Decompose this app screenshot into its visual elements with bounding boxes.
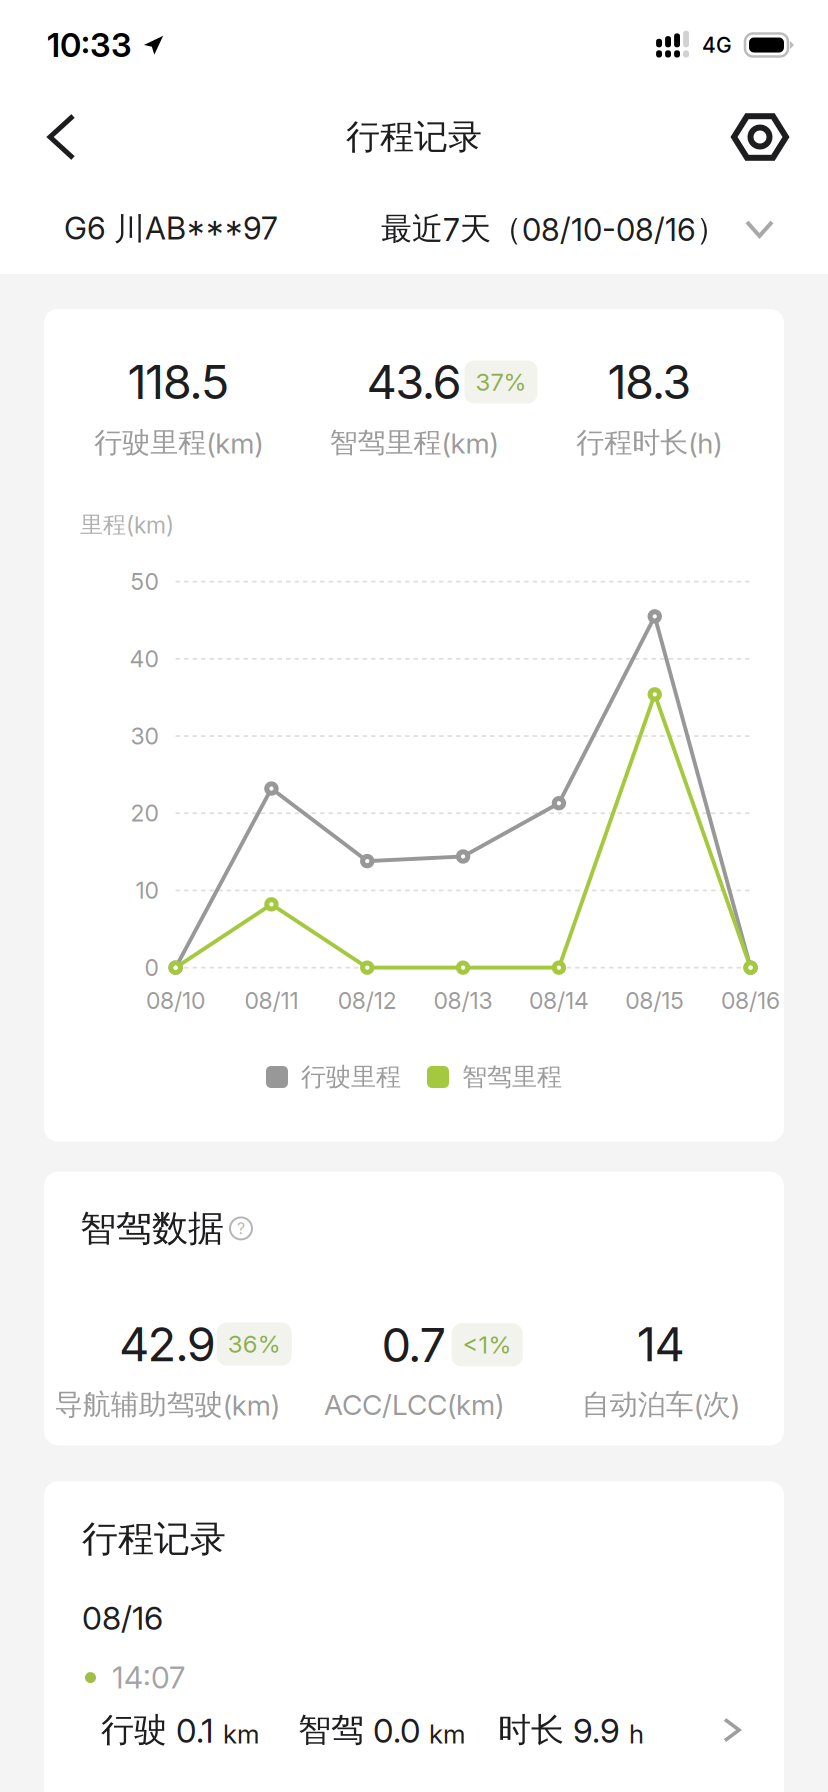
staticText: ? bbox=[237, 1219, 245, 1238]
staticText: 08/16 bbox=[721, 987, 780, 1014]
staticText: 行驶 0.1 km bbox=[101, 1710, 259, 1750]
staticText: 行程记录 bbox=[346, 116, 482, 158]
button[interactable]: 14:07 bbox=[82, 1637, 739, 1750]
button[interactable]: 最近7天（08/10-08/16） bbox=[381, 209, 772, 249]
staticText: 118.5 bbox=[127, 354, 230, 410]
staticText: 智驾数据 bbox=[80, 1206, 224, 1251]
staticText: 43.6 bbox=[367, 354, 461, 410]
staticText: 行程记录 bbox=[82, 1516, 226, 1562]
staticText: 14:07 bbox=[112, 1659, 185, 1696]
staticText: 08/12 bbox=[338, 987, 397, 1014]
staticText: 08/13 bbox=[434, 987, 493, 1014]
staticText: 08/11 bbox=[244, 987, 298, 1014]
staticText: 08/10 bbox=[146, 987, 205, 1014]
staticText: 0 bbox=[145, 954, 159, 981]
staticText: 42.9 bbox=[119, 1316, 216, 1373]
staticText: 50 bbox=[131, 568, 159, 595]
staticText: 08/14 bbox=[529, 987, 589, 1014]
button[interactable]: 设置 bbox=[716, 97, 804, 177]
staticText: 4G bbox=[702, 32, 732, 58]
staticText: 08/15 bbox=[625, 987, 684, 1014]
staticText: 最近7天（08/10-08/16） bbox=[381, 209, 727, 249]
staticText: 自动泊车(次) bbox=[582, 1387, 740, 1422]
staticText: 智驾 0.0 km bbox=[298, 1710, 465, 1750]
button[interactable]: 返回 bbox=[24, 98, 99, 176]
staticText: 08/16 bbox=[82, 1599, 163, 1637]
staticText: 20 bbox=[131, 799, 159, 827]
staticText: 导航辅助驾驶(km) bbox=[55, 1387, 280, 1422]
staticText: 30 bbox=[131, 722, 159, 750]
staticText: 智驾里程 bbox=[462, 1061, 562, 1093]
staticText: 行程时长(h) bbox=[576, 425, 722, 460]
staticText: ACC/LCC(km) bbox=[324, 1388, 504, 1422]
staticText: 14 bbox=[637, 1316, 684, 1373]
staticText: 18.3 bbox=[607, 354, 691, 410]
staticText: G6 川AB***97 bbox=[64, 209, 278, 249]
staticText: <1% bbox=[463, 1330, 512, 1359]
staticText: 行驶里程(km) bbox=[94, 425, 263, 460]
staticText: 行驶里程 bbox=[301, 1061, 401, 1093]
staticText: 40 bbox=[130, 645, 159, 673]
staticText: 智驾里程(km) bbox=[329, 425, 498, 460]
staticText: 10 bbox=[136, 876, 159, 904]
staticText: 里程(km) bbox=[80, 510, 174, 539]
staticText: 时长 9.9 h bbox=[498, 1710, 644, 1750]
staticText: 37% bbox=[475, 367, 526, 396]
staticText: 10:33 bbox=[47, 25, 132, 65]
staticText: 36% bbox=[228, 1330, 281, 1359]
staticText: 0.7 bbox=[381, 1316, 447, 1373]
